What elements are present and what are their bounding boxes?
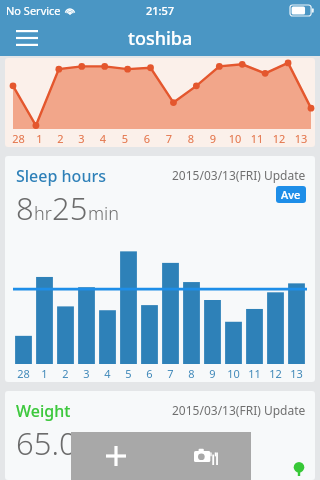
staticText: 2 [55, 366, 76, 381]
staticText: hr [34, 201, 52, 226]
staticText: 12 [268, 131, 290, 146]
staticText: 3 [71, 131, 92, 146]
staticText: 10 [224, 131, 246, 146]
staticText: 9 [202, 366, 223, 381]
staticText: No Service [6, 3, 61, 18]
staticText: Sleep hours [16, 165, 106, 187]
staticText: 2015/03/13(FRI) Update [172, 402, 306, 418]
staticText: 12 [265, 366, 286, 381]
staticText: 21:57 [146, 3, 175, 18]
staticText: 8 [180, 131, 202, 146]
button[interactable]: Sleep hours [5, 156, 315, 382]
staticText: 28 [8, 131, 29, 146]
staticText: 8 [181, 366, 202, 381]
staticText: 13 [286, 366, 307, 381]
staticText: 6 [136, 131, 158, 146]
staticText: 9 [202, 131, 224, 146]
button[interactable]: Add [71, 432, 161, 480]
staticText: 5 [114, 131, 136, 146]
staticText: 2015/03/13(FRI) Update [172, 167, 306, 183]
staticText: 1 [29, 131, 50, 146]
staticText: 65.0 [16, 422, 77, 464]
button[interactable]: Menu [10, 21, 44, 55]
staticText: min [88, 201, 119, 226]
staticText: Ave [281, 187, 301, 202]
staticText: 8 [16, 187, 34, 229]
staticText: 4 [97, 366, 118, 381]
staticText: 7 [160, 366, 181, 381]
staticText: 11 [244, 366, 265, 381]
staticText: Weight [16, 400, 71, 422]
staticText: 13 [290, 131, 312, 146]
staticText: 4 [92, 131, 114, 146]
staticText: 5 [118, 366, 139, 381]
staticText: 25 [52, 187, 88, 229]
button[interactable]: Weight [5, 391, 315, 480]
staticText: toshiba [128, 26, 193, 51]
staticText: 11 [246, 131, 268, 146]
staticText: 10 [223, 366, 244, 381]
staticText: 6 [139, 366, 160, 381]
button[interactable]: 28 [5, 58, 315, 147]
staticText: 3 [76, 366, 97, 381]
staticText: 7 [158, 131, 180, 146]
staticText: 28 [13, 366, 34, 381]
staticText: 1 [34, 366, 55, 381]
staticText: 2 [50, 131, 71, 146]
button[interactable]: Photo meal [161, 432, 251, 480]
